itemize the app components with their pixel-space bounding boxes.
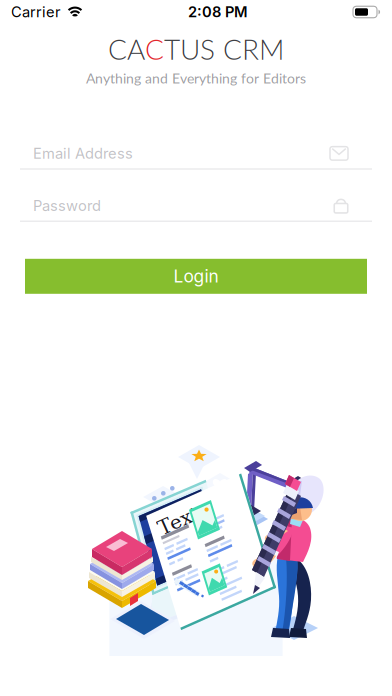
button[interactable]: Login — [25, 259, 367, 294]
staticText: CRM — [223, 32, 284, 66]
button[interactable]: Email Address — [20, 138, 372, 170]
staticText: Anything and Everything for Editors — [86, 70, 306, 86]
staticText: TUS — [164, 32, 223, 66]
staticText: Password — [33, 197, 101, 214]
staticText: CA — [108, 32, 145, 66]
staticText: C — [145, 32, 164, 66]
staticText: Text — [157, 509, 200, 532]
staticText: Carrier — [11, 3, 61, 21]
staticText: Email Address — [33, 144, 133, 162]
button[interactable]: Password — [20, 191, 372, 222]
staticText: 2:08 PM — [188, 3, 248, 21]
staticText: Login — [173, 266, 218, 287]
